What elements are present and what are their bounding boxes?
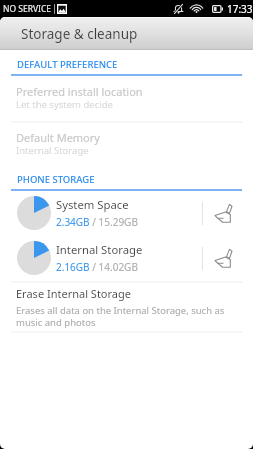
staticText: System Space: [56, 197, 129, 212]
staticText: Erase Internal Storage: [16, 286, 131, 301]
staticText: Default Memory: [16, 130, 100, 145]
staticText: Internal Storage: [16, 144, 89, 157]
staticText: DEFAULT PREFERENCE: [17, 58, 118, 71]
button[interactable]: System Space: [0, 196, 253, 230]
staticText: 2.34GB / 15.29GB: [56, 215, 138, 229]
staticText: NO SERVICE: [3, 3, 52, 15]
button[interactable]: Clean: [203, 241, 244, 275]
staticText: PHONE STORAGE: [17, 173, 95, 186]
staticText: Preferred install location: [16, 84, 143, 99]
staticText: 2.16GB / 14.02GB: [56, 260, 138, 274]
button[interactable]: Internal Storage: [0, 241, 253, 275]
staticText: Storage & cleanup: [21, 25, 138, 43]
button[interactable]: Erase Internal Storage: [0, 286, 253, 329]
staticText: Internal Storage: [56, 242, 143, 257]
staticText: 17:33: [227, 2, 253, 16]
button[interactable]: Clean: [203, 196, 244, 230]
staticText: Let the system decide: [16, 98, 113, 111]
staticText: Erases all data on the Internal Storage,…: [16, 304, 225, 329]
